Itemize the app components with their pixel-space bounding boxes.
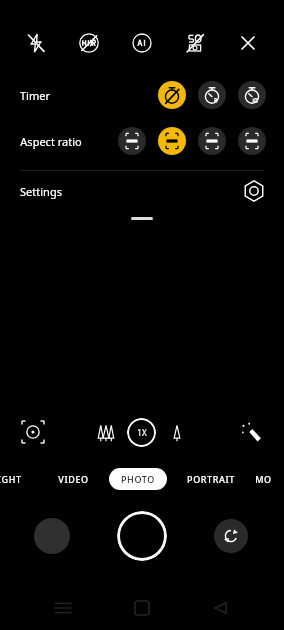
- button[interactable]: Settings: [0, 171, 284, 211]
- staticText: Timer: [20, 88, 50, 103]
- button[interactable]: PORTRAIT: [185, 468, 237, 490]
- button[interactable]: [198, 81, 226, 109]
- button[interactable]: MO: [253, 468, 274, 490]
- button[interactable]: Home: [126, 592, 158, 624]
- button[interactable]: 50 MP off: [178, 26, 212, 60]
- staticText: Settings: [20, 184, 62, 199]
- button[interactable]: Timer: [0, 76, 284, 114]
- button[interactable]: VIDEO: [56, 468, 91, 490]
- staticText: PHOTO: [121, 473, 155, 485]
- button[interactable]: Recents: [47, 592, 79, 624]
- staticText: 1X: [137, 427, 147, 438]
- button[interactable]: Filters: [236, 417, 266, 447]
- button[interactable]: [198, 127, 226, 155]
- button[interactable]: PHOTO: [109, 468, 167, 490]
- button[interactable]: AI scene detection: [125, 26, 159, 60]
- staticText: Aspect ratio: [20, 134, 82, 149]
- button[interactable]: [238, 81, 266, 109]
- button[interactable]: Gallery: [34, 518, 70, 554]
- staticText: PORTRAIT: [187, 473, 235, 485]
- button[interactable]: Telephoto: [162, 417, 192, 447]
- staticText: MO: [255, 473, 272, 485]
- button[interactable]: Close: [231, 26, 265, 60]
- button[interactable]: Shutter: [117, 511, 167, 561]
- button[interactable]: [118, 127, 146, 155]
- staticText: NIGHT: [0, 473, 22, 485]
- button[interactable]: [158, 127, 186, 155]
- button[interactable]: HDR off: [72, 26, 106, 60]
- button[interactable]: Switch camera: [214, 519, 248, 553]
- button[interactable]: 1X: [127, 418, 156, 447]
- button[interactable]: Macro focus: [18, 417, 48, 447]
- button[interactable]: [238, 127, 266, 155]
- button[interactable]: Aspect ratio: [0, 122, 284, 160]
- button[interactable]: Back: [205, 592, 237, 624]
- button[interactable]: NIGHT: [0, 468, 24, 490]
- staticText: VIDEO: [58, 473, 89, 485]
- button[interactable]: Ultra wide: [91, 417, 121, 447]
- button[interactable]: [158, 81, 186, 109]
- button[interactable]: Flash off: [19, 26, 53, 60]
- other: Settings: [240, 177, 268, 205]
